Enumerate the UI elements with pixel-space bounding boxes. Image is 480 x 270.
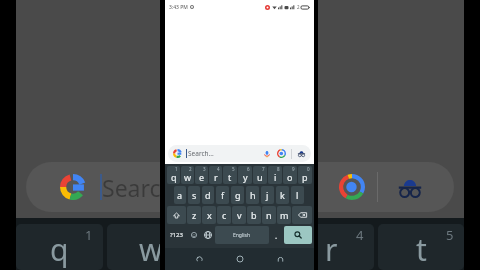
staticText: u	[257, 171, 263, 183]
staticText: 2	[176, 226, 184, 244]
staticText: Search...	[102, 172, 194, 203]
staticText: 6	[247, 166, 250, 172]
button[interactable]: f	[216, 186, 229, 204]
staticText: t	[416, 229, 427, 270]
staticText: q	[50, 229, 69, 270]
staticText: 7	[262, 166, 265, 172]
button[interactable]: g	[231, 186, 244, 204]
staticText: Search...	[188, 149, 214, 158]
button[interactable]: Voice search	[263, 150, 271, 158]
staticText: .	[275, 230, 278, 241]
button[interactable]: Search...	[168, 145, 311, 162]
button[interactable]: v	[232, 206, 246, 224]
staticText: 5	[232, 166, 235, 172]
staticText: z	[192, 209, 197, 221]
button[interactable]: Back	[192, 252, 206, 266]
button[interactable]: Emoji	[187, 226, 200, 244]
staticText: v	[237, 209, 242, 221]
button[interactable]: .	[270, 226, 283, 244]
button[interactable]: Change keyboard language	[201, 226, 214, 244]
button[interactable]: 8	[268, 166, 282, 184]
staticText: p	[302, 171, 308, 183]
staticText: w	[184, 171, 192, 183]
staticText: r	[325, 229, 338, 270]
staticText: 4	[356, 226, 364, 244]
staticText: x	[207, 209, 212, 221]
staticText: 3	[266, 226, 274, 244]
staticText: 3:43 PM	[169, 4, 188, 11]
button[interactable]: Recent apps	[273, 252, 287, 266]
staticText: a	[177, 189, 183, 201]
staticText: 3	[203, 166, 206, 172]
staticText: y	[243, 171, 248, 183]
staticText: d	[205, 189, 211, 201]
staticText: j	[266, 189, 269, 201]
staticText: t	[228, 171, 232, 183]
button[interactable]: c	[217, 206, 231, 224]
button[interactable]: ?123	[167, 226, 186, 244]
button[interactable]: Search	[284, 226, 312, 244]
button[interactable]: b	[247, 206, 261, 224]
button[interactable]: 3	[195, 166, 208, 184]
button[interactable]: n	[262, 206, 276, 224]
staticText: e	[199, 171, 205, 183]
staticText: f	[221, 189, 225, 201]
staticText: n	[266, 209, 272, 221]
button[interactable]: Backspace	[292, 206, 312, 224]
staticText: 1	[85, 226, 93, 244]
button[interactable]: 9	[283, 166, 297, 184]
staticText: 2	[189, 166, 192, 172]
staticText: q	[171, 171, 177, 183]
staticText: 1	[175, 166, 178, 172]
button[interactable]: 4	[209, 166, 222, 184]
staticText: ?123	[170, 231, 183, 239]
staticText: e	[233, 229, 250, 270]
staticText: m	[280, 209, 289, 221]
button[interactable]: a	[174, 186, 186, 204]
button[interactable]: j	[261, 186, 274, 204]
button[interactable]: x	[202, 206, 216, 224]
staticText: 8	[277, 166, 280, 172]
staticText: 9	[292, 166, 295, 172]
staticText: r	[214, 171, 218, 183]
staticText: w	[139, 229, 163, 270]
button[interactable]: m	[277, 206, 291, 224]
staticText: g	[235, 189, 241, 201]
button[interactable]: h	[246, 186, 259, 204]
button[interactable]: 6	[238, 166, 252, 184]
staticText: 4	[217, 166, 220, 172]
button[interactable]: d	[202, 186, 214, 204]
staticText: h	[250, 189, 256, 201]
button[interactable]: Incognito	[297, 149, 306, 158]
button[interactable]: Shift	[167, 206, 186, 224]
button[interactable]: z	[187, 206, 201, 224]
staticText: 2	[297, 4, 300, 10]
staticText: English	[233, 232, 251, 239]
staticText: l	[296, 189, 299, 201]
button[interactable]: s	[188, 186, 200, 204]
staticText: c	[222, 209, 227, 221]
button[interactable]: 2	[181, 166, 194, 184]
staticText: i	[274, 171, 277, 183]
staticText: o	[287, 171, 293, 183]
button[interactable]: Home	[233, 252, 247, 266]
staticText: k	[280, 189, 285, 201]
button[interactable]: 5	[223, 166, 237, 184]
button[interactable]: Google Lens	[277, 149, 286, 158]
button[interactable]: 7	[253, 166, 267, 184]
staticText: b	[251, 209, 257, 221]
button[interactable]: 0	[298, 166, 312, 184]
button[interactable]: 1	[167, 166, 180, 184]
button[interactable]: k	[276, 186, 289, 204]
button[interactable]: l	[291, 186, 304, 204]
staticText: 0	[307, 166, 310, 172]
button[interactable]: English	[215, 226, 269, 244]
staticText: s	[192, 189, 197, 201]
staticText: 5	[446, 226, 454, 244]
